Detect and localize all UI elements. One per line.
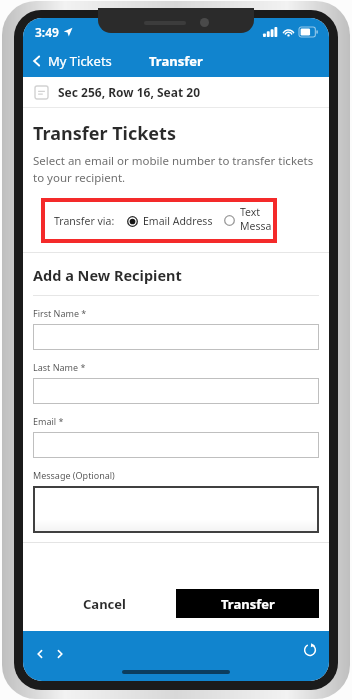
button[interactable]: Text Message	[224, 202, 273, 239]
button[interactable]	[33, 324, 319, 350]
button[interactable]: Email Address	[127, 211, 213, 231]
staticText: Transfer	[221, 595, 275, 613]
staticText: 3:49	[35, 24, 59, 40]
button[interactable]: Sec 256, Row 16, Seat 20	[23, 77, 329, 107]
staticText: Select an email or mobile number to tran…	[33, 153, 319, 186]
staticText: Text Message	[240, 205, 273, 236]
staticText: My Tickets	[48, 52, 112, 70]
button[interactable]	[33, 486, 319, 533]
staticText: Cancel	[83, 595, 126, 613]
staticText: Transfer via:	[54, 214, 115, 228]
staticText: First Name *	[33, 307, 87, 319]
staticText: Sec 256, Row 16, Seat 20	[58, 84, 201, 100]
button[interactable]	[33, 432, 319, 458]
staticText: Email Address	[143, 214, 213, 228]
staticText: Last Name *	[33, 361, 86, 373]
button[interactable]: Back	[30, 644, 50, 664]
button[interactable]: Transfer	[176, 589, 319, 618]
staticText: Message (Optional)	[33, 469, 115, 481]
button[interactable]: Cancel	[33, 589, 176, 618]
button[interactable]: Refresh	[299, 639, 321, 661]
button[interactable]: My Tickets	[23, 48, 120, 74]
staticText: Add a New Recipient	[33, 265, 182, 285]
button[interactable]: Forward	[50, 644, 70, 664]
button[interactable]	[33, 378, 319, 404]
staticText: Email *	[33, 415, 64, 427]
staticText: Transfer Tickets	[33, 121, 176, 146]
staticText: Transfer	[149, 52, 203, 70]
